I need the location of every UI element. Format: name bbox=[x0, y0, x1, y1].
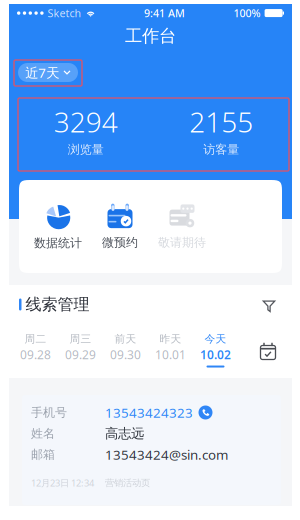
staticText: 高志远 bbox=[105, 425, 144, 442]
staticText: 10.01 bbox=[155, 347, 186, 362]
staticText: 9:41 AM bbox=[144, 6, 185, 20]
staticText: 09.29 bbox=[65, 347, 96, 362]
staticText: 12月23日 12:34 bbox=[31, 477, 94, 489]
staticText: 浏览量 bbox=[68, 142, 104, 157]
staticText: 今天 bbox=[204, 332, 226, 346]
staticText: 前天 bbox=[114, 332, 136, 346]
staticText: 2155 bbox=[189, 103, 253, 140]
staticText: 姓名 bbox=[31, 426, 55, 441]
button[interactable]: 前天 bbox=[103, 332, 148, 368]
button[interactable]: 近7天 bbox=[18, 63, 78, 82]
button[interactable]: 微预约 bbox=[89, 199, 151, 253]
button[interactable]: Call bbox=[193, 405, 213, 420]
staticText: Sketch bbox=[48, 6, 82, 20]
staticText: 数据统计 bbox=[34, 236, 82, 250]
staticText: 手机号 bbox=[31, 405, 67, 420]
staticText: 周三 bbox=[69, 332, 91, 346]
button[interactable]: 数据统计 bbox=[27, 199, 89, 253]
staticText: 工作台 bbox=[125, 25, 176, 47]
staticText: 访客量 bbox=[203, 142, 239, 157]
staticText: 13543424323 bbox=[105, 404, 193, 421]
staticText: 09.28 bbox=[20, 347, 51, 362]
staticText: 昨天 bbox=[159, 332, 181, 346]
button[interactable]: 周三 bbox=[58, 332, 103, 368]
staticText: 微预约 bbox=[102, 235, 138, 250]
button[interactable]: 敬请期待 bbox=[151, 199, 213, 253]
button[interactable]: 周二 bbox=[13, 332, 58, 368]
staticText: 10.02 bbox=[200, 347, 231, 362]
staticText: 09.30 bbox=[110, 347, 141, 362]
button[interactable]: Pick date bbox=[259, 341, 276, 360]
staticText: 周二 bbox=[24, 332, 46, 346]
staticText: 近7天 bbox=[25, 64, 59, 81]
staticText: 营销活动页 bbox=[105, 477, 150, 489]
staticText: 3294 bbox=[54, 103, 118, 140]
staticText: 线索管理 bbox=[25, 295, 89, 314]
staticText: 邮箱 bbox=[31, 447, 55, 462]
button[interactable]: 昨天 bbox=[148, 332, 193, 368]
staticText: 敬请期待 bbox=[158, 235, 206, 250]
button[interactable]: 今天 bbox=[193, 332, 238, 368]
staticText: 100% bbox=[234, 6, 261, 20]
button[interactable]: Filter bbox=[262, 299, 275, 312]
staticText: 13543424@sin.com bbox=[105, 446, 228, 463]
